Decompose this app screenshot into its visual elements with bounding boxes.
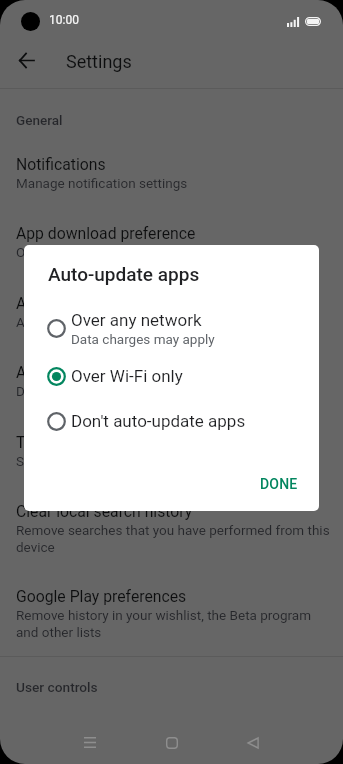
staticText: Theme <box>16 433 65 451</box>
button[interactable]: Over Wi-Fi only <box>24 366 319 386</box>
staticText: Remove searches that you have performed … <box>16 522 330 555</box>
staticText: App download preference <box>16 224 196 242</box>
staticText: Notifications <box>16 155 106 173</box>
button[interactable]: Google Play preferences <box>16 587 343 638</box>
button[interactable]: Theme <box>16 433 343 467</box>
staticText: Settings <box>66 51 132 72</box>
button[interactable]: Notifications <box>16 155 343 189</box>
staticText: Over any network <box>16 244 120 260</box>
staticText: System default <box>16 453 107 469</box>
button[interactable]: Auto-play videos <box>16 363 343 397</box>
staticText: User controls <box>16 679 98 695</box>
staticText: DONE <box>260 476 298 492</box>
button[interactable]: Navigate up <box>19 53 34 68</box>
staticText: Don't auto-update apps <box>71 411 246 431</box>
staticText: 10:00 <box>49 13 79 27</box>
button[interactable]: Over any network <box>24 310 319 346</box>
staticText: Remove history in your wishlist, the Bet… <box>16 607 312 640</box>
button[interactable]: Don't auto-update apps <box>24 411 319 431</box>
staticText: General <box>16 112 63 128</box>
button[interactable]: Back <box>229 719 276 764</box>
staticText: Auto-update apps over Wi-Fi only <box>16 314 213 330</box>
button[interactable]: Auto-update apps <box>16 294 343 328</box>
staticText: Over any network <box>71 310 202 330</box>
staticText: Auto-update apps <box>48 263 200 285</box>
button[interactable]: Home <box>148 719 195 764</box>
button[interactable]: Recent apps <box>66 719 113 764</box>
staticText: Auto-update apps <box>16 294 140 312</box>
staticText: Data charges may apply <box>16 383 160 399</box>
button[interactable]: App download preference <box>16 224 343 258</box>
staticText: Data charges may apply <box>71 331 215 347</box>
button[interactable]: DONE <box>248 467 310 501</box>
staticText: Manage notification settings <box>16 175 188 191</box>
staticText: Over Wi-Fi only <box>71 366 183 386</box>
staticText: Auto-play videos <box>16 363 132 381</box>
staticText: Clear local search history <box>16 502 193 520</box>
button[interactable]: Clear local search history <box>16 502 343 553</box>
staticText: Google Play preferences <box>16 587 187 605</box>
